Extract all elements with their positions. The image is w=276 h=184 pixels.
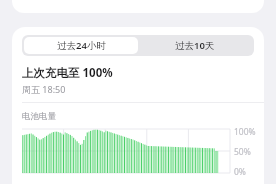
staticText: 50% (234, 146, 251, 158)
staticText: 0% (234, 166, 246, 178)
staticText: 100% (234, 126, 256, 138)
button[interactable]: 过去24小时 (24, 37, 138, 54)
staticText: 上次充电至 100% (22, 65, 113, 81)
staticText: 周五 18:50 (22, 83, 66, 95)
button[interactable]: 过去10天 (138, 37, 252, 54)
staticText: 电池电量 (22, 111, 56, 122)
staticText: 过去24小时 (57, 39, 106, 52)
staticText: 过去10天 (175, 39, 215, 52)
